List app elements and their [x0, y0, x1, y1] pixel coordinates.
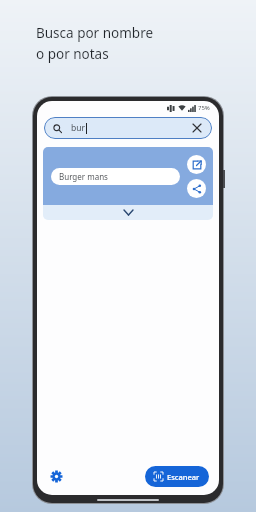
staticText: bur: [71, 122, 85, 134]
staticText: Burger mans: [59, 171, 108, 182]
button[interactable]: Escanear: [145, 466, 209, 487]
button[interactable]: Open in new: [187, 155, 206, 174]
staticText: Busca por nombre: [36, 24, 154, 42]
staticText: Escanear: [167, 472, 200, 482]
button[interactable]: Burger mans: [51, 168, 180, 185]
button[interactable]: Share: [187, 179, 206, 198]
button[interactable]: Clear search: [191, 122, 203, 134]
button[interactable]: bur: [44, 117, 212, 139]
staticText: o por notas: [36, 45, 109, 63]
button[interactable]: Settings: [47, 467, 65, 485]
button[interactable]: Expand: [43, 205, 213, 220]
staticText: 75%: [198, 104, 210, 112]
